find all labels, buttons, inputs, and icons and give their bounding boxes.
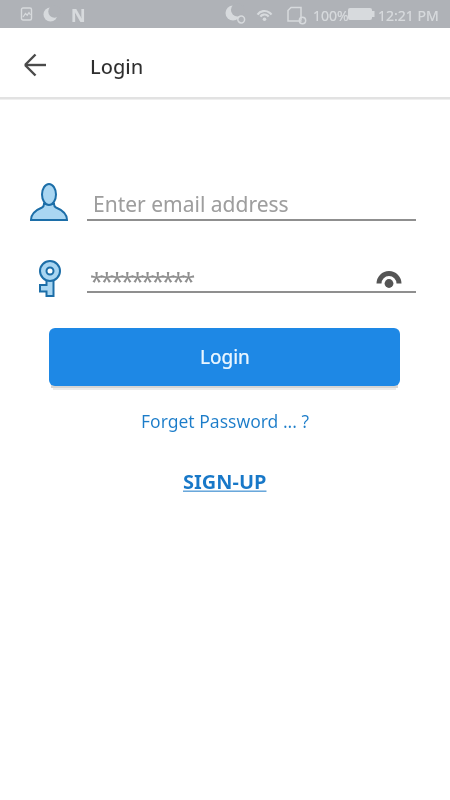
staticText: 100%: [313, 6, 349, 25]
button[interactable]: [24, 54, 47, 76]
button[interactable]: [376, 268, 402, 290]
staticText: **********: [90, 264, 193, 297]
staticText: Login: [90, 53, 144, 80]
staticText: N: [71, 3, 86, 28]
staticText: Login: [200, 344, 250, 370]
button[interactable]: Login: [49, 328, 400, 386]
staticText: 12:21 PM: [378, 6, 439, 25]
button[interactable]: Forget Password ... ?: [141, 409, 310, 433]
button[interactable]: SIGN-UP: [183, 468, 267, 495]
staticText: Enter email address: [93, 190, 289, 219]
